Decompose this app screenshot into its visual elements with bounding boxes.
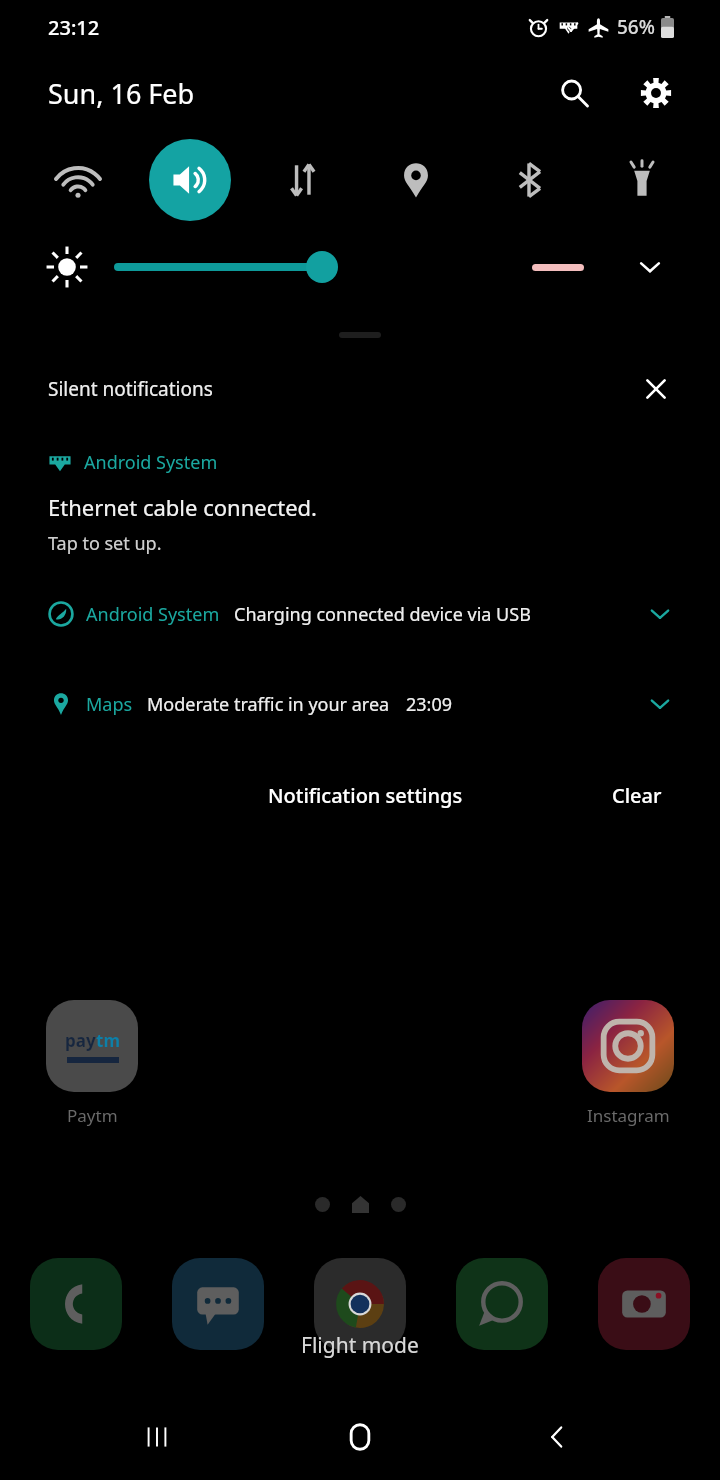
- staticText: Instagram: [587, 1104, 670, 1127]
- staticText: Silent notifications: [48, 376, 213, 402]
- staticText: 23:09: [406, 692, 453, 717]
- button[interactable]: Expand notification: [640, 684, 680, 724]
- staticText: Clear: [612, 782, 662, 809]
- button[interactable]: Clear silent notifications: [632, 365, 680, 413]
- button[interactable]: Clear: [602, 774, 672, 817]
- button[interactable]: Android System: [0, 594, 720, 634]
- button[interactable]: Bluetooth: [472, 132, 585, 228]
- staticText: Android System: [84, 450, 218, 475]
- staticText: Charging connected device via USB: [234, 602, 531, 627]
- staticText: 23:12: [48, 14, 100, 41]
- button[interactable]: Recents: [128, 1408, 186, 1466]
- button[interactable]: Paytm: [46, 1000, 138, 1127]
- button[interactable]: Settings: [630, 67, 682, 119]
- button[interactable]: Camera: [598, 1258, 690, 1350]
- button[interactable]: Mobile data: [246, 132, 359, 228]
- staticText: Ethernet cable connected.: [48, 492, 317, 522]
- button[interactable]: Notification settings: [258, 774, 473, 817]
- staticText: Notification settings: [268, 782, 463, 809]
- button[interactable]: Home: [331, 1408, 389, 1466]
- staticText: Tap to set up.: [48, 531, 162, 556]
- staticText: Maps: [86, 692, 133, 717]
- button[interactable]: Maps: [0, 684, 720, 724]
- staticText: tm: [96, 1029, 120, 1052]
- button[interactable]: Search: [548, 67, 600, 119]
- button[interactable]: Android System: [0, 450, 720, 556]
- button[interactable]: Brightness: [110, 240, 336, 294]
- button[interactable]: Sound: [134, 132, 246, 228]
- staticText: Android System: [86, 602, 220, 627]
- staticText: pay: [65, 1029, 96, 1052]
- button[interactable]: Location: [359, 132, 472, 228]
- button[interactable]: WhatsApp: [456, 1258, 548, 1350]
- button[interactable]: Expand brightness settings: [628, 245, 672, 289]
- staticText: Moderate traffic in your area: [147, 692, 390, 717]
- staticText: 56%: [617, 14, 655, 40]
- staticText: Sun, 16 Feb: [48, 75, 195, 112]
- staticText: Flight mode: [301, 1331, 419, 1360]
- button[interactable]: Auto brightness: [520, 245, 594, 289]
- button[interactable]: Phone: [30, 1258, 122, 1350]
- button[interactable]: Expand notification: [640, 594, 680, 634]
- button[interactable]: Wi-Fi: [22, 132, 134, 228]
- staticText: Paytm: [67, 1104, 118, 1127]
- button[interactable]: Instagram: [582, 1000, 674, 1127]
- button[interactable]: Back: [528, 1408, 586, 1466]
- button[interactable]: Messages: [172, 1258, 264, 1350]
- button[interactable]: Chrome: [314, 1258, 406, 1350]
- button[interactable]: Flashlight: [585, 132, 698, 228]
